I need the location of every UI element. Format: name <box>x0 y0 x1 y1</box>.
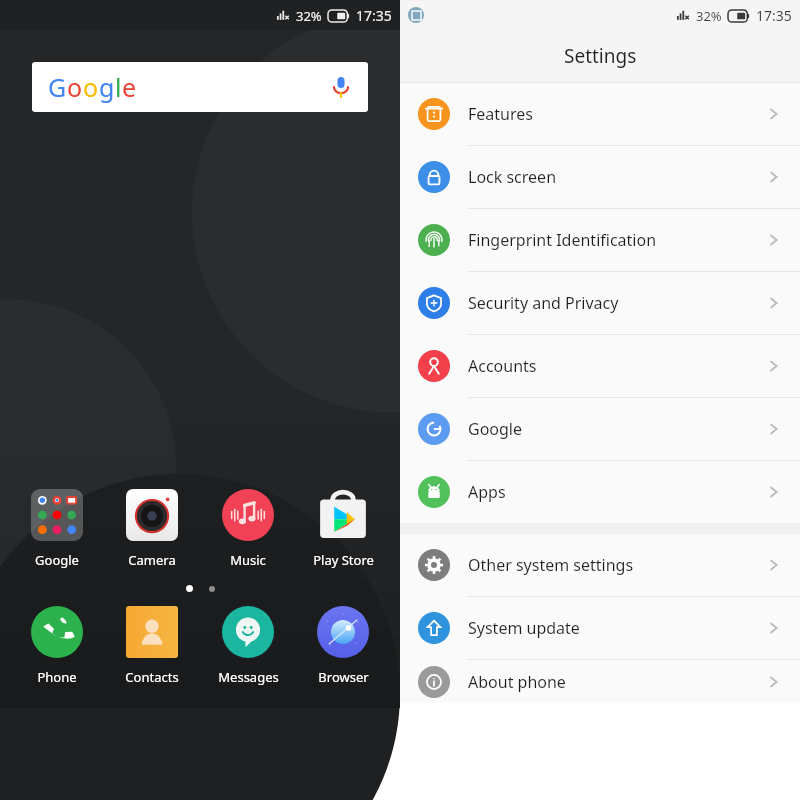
staticText: o <box>67 70 83 104</box>
staticText: Browser <box>318 668 369 686</box>
staticText: Security and Privacy <box>468 292 619 314</box>
button[interactable]: About phone <box>400 660 800 703</box>
button[interactable]: Camera <box>109 485 195 571</box>
staticText: System update <box>468 617 580 639</box>
button[interactable]: Google <box>14 485 100 571</box>
button[interactable]: Features <box>400 83 800 145</box>
button[interactable]: Security and Privacy <box>400 272 800 334</box>
staticText: Phone <box>37 668 77 686</box>
staticText: Camera <box>128 551 176 569</box>
button[interactable]: System update <box>400 597 800 659</box>
staticText: Lock screen <box>468 166 557 188</box>
staticText: e <box>122 70 137 104</box>
button[interactable]: Other system settings <box>400 534 800 596</box>
button[interactable]: Lock screen <box>400 146 800 208</box>
staticText: g <box>99 70 115 104</box>
staticText: 17:35 <box>756 6 792 25</box>
staticText: l <box>115 70 122 104</box>
staticText: Settings <box>564 43 637 69</box>
staticText: Google <box>35 551 79 569</box>
staticText: Apps <box>468 481 506 503</box>
button[interactable]: Google search <box>32 62 368 112</box>
button[interactable]: Phone <box>14 602 100 688</box>
button[interactable]: Browser <box>300 602 386 688</box>
staticText: Play Store <box>313 551 374 569</box>
staticText: Contacts <box>125 668 179 686</box>
staticText: Features <box>468 103 533 125</box>
staticText: Messages <box>218 668 279 686</box>
button[interactable]: Play Store <box>300 485 386 571</box>
button[interactable]: Music <box>205 485 291 571</box>
button[interactable]: Fingerprint Identification <box>400 209 800 271</box>
staticText: 32% <box>696 7 722 25</box>
button[interactable]: Google <box>400 398 800 460</box>
button[interactable]: Contacts <box>109 602 195 688</box>
staticText: Music <box>230 551 266 569</box>
staticText: Other system settings <box>468 554 634 576</box>
button[interactable]: Messages <box>205 602 291 688</box>
staticText: Google <box>468 418 523 440</box>
button[interactable]: Apps <box>400 461 800 523</box>
staticText: 32% <box>296 7 322 25</box>
staticText: o <box>83 70 99 104</box>
staticText: G <box>48 70 67 104</box>
staticText: 17:35 <box>356 6 392 25</box>
button[interactable]: Accounts <box>400 335 800 397</box>
staticText: About phone <box>468 671 566 693</box>
staticText: Accounts <box>468 355 537 377</box>
staticText: Fingerprint Identification <box>468 229 657 251</box>
